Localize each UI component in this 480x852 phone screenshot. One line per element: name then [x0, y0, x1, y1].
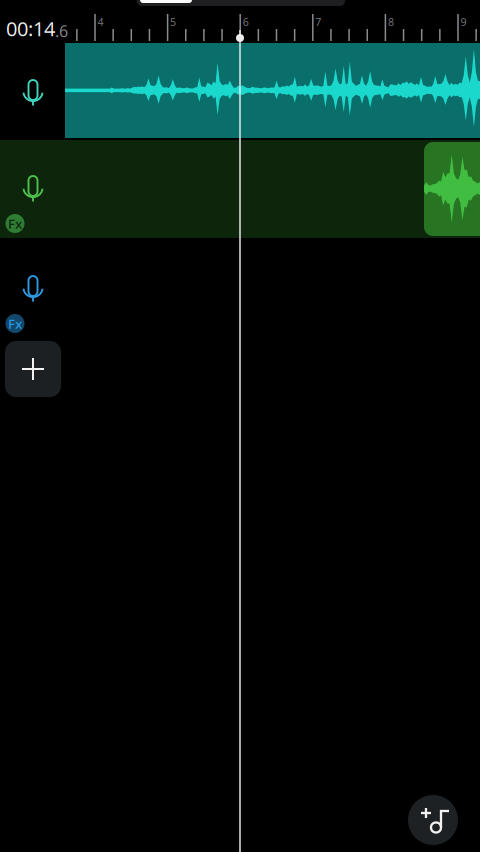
button[interactable]: Effects — [2, 210, 28, 236]
button[interactable]: Add track — [5, 341, 61, 397]
staticText: .6 — [55, 20, 68, 42]
button[interactable]: Loop browser — [408, 795, 458, 845]
staticText: Fx — [8, 215, 22, 232]
button[interactable]: Track input — [11, 168, 55, 212]
staticText: Fx — [8, 315, 22, 332]
staticText: 7 — [315, 15, 321, 29]
button[interactable]: Effects — [2, 310, 28, 336]
staticText: 5 — [170, 15, 176, 29]
button[interactable]: Track input — [11, 72, 55, 116]
staticText: 9 — [460, 15, 466, 29]
staticText: 00:14 — [6, 15, 55, 42]
staticText: 4 — [97, 15, 103, 29]
button[interactable]: Track input — [11, 268, 55, 312]
staticText: 8 — [388, 15, 394, 29]
staticText: 6 — [243, 15, 249, 29]
